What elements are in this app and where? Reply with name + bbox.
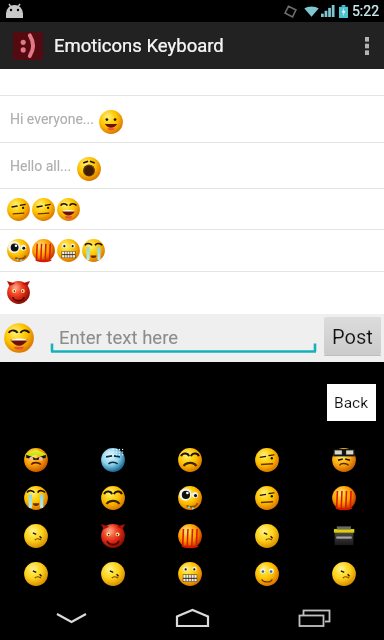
staticText: 5:22 [352,3,379,19]
staticText: Back [334,394,369,412]
staticText: Hello all... [10,158,72,174]
button[interactable]: Emoticon 17 [74,555,151,593]
button[interactable]: Hello all... [0,143,384,188]
button[interactable]: Emoticon 16 [0,555,74,593]
button[interactable]: Emoticon 4 [228,441,305,479]
button[interactable]: Emoticon 12 [74,517,151,555]
button[interactable]: Emoticon 5 [305,441,382,479]
button[interactable]: Emoticon 8 [151,479,228,517]
staticText: Enter text here [59,327,179,349]
button[interactable] [0,230,384,271]
button[interactable]: Choose emoticon [4,323,34,353]
button[interactable]: Emoticon 10 [305,479,382,517]
button[interactable]: Back [327,384,376,421]
button[interactable]: Emoticon 1 [0,441,74,479]
button[interactable]: Recent apps [284,596,344,640]
button[interactable]: Post [324,317,381,355]
button[interactable]: Emoticon 11 [0,517,74,555]
button[interactable]: Emoticon 6 [0,479,74,517]
button[interactable]: Emoticon 2 [74,441,151,479]
button[interactable]: More options [350,22,384,69]
staticText: Post [332,325,373,348]
button[interactable]: Emoticon 18 [151,555,228,593]
button[interactable]: Emoticon 7 [74,479,151,517]
button[interactable] [0,189,384,229]
button[interactable] [0,272,384,313]
button[interactable]: Emoticon 13 [151,517,228,555]
button[interactable]: Emoticon 19 [228,555,305,593]
button[interactable]: Home [162,596,222,640]
staticText: Emoticons Keyboard [54,35,224,57]
button[interactable]: Emoticon 15 [305,517,382,555]
button[interactable]: Hide keyboard [41,596,101,640]
button[interactable]: Hi everyone... [0,96,384,142]
button[interactable]: Emoticon 20 [305,555,382,593]
button[interactable]: Emoticon 9 [228,479,305,517]
button[interactable]: Emoticon 14 [228,517,305,555]
button[interactable]: Emoticon 3 [151,441,228,479]
staticText: Hi everyone... [10,111,94,127]
